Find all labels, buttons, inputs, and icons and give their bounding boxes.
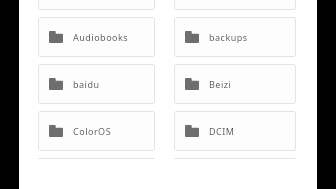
other: Folder	[49, 125, 63, 137]
staticText: baidu	[73, 78, 100, 90]
other: Folder	[185, 125, 199, 137]
button[interactable]: Folder	[38, 111, 155, 151]
other: Folder	[49, 31, 63, 43]
button[interactable]: Folder	[174, 17, 296, 57]
staticText: backups	[209, 31, 248, 43]
button[interactable]: Folder	[38, 17, 155, 57]
button[interactable]: Folder	[174, 111, 296, 151]
other: Folder	[185, 31, 199, 43]
button[interactable]: Folder	[38, 0, 155, 10]
staticText: Beizi	[209, 78, 232, 90]
staticText: Audiobooks	[73, 31, 129, 43]
other: Folder	[49, 78, 63, 90]
staticText: ColorOS	[73, 125, 112, 137]
button[interactable]: Folder	[174, 64, 296, 104]
staticText: DCIM	[209, 125, 235, 137]
button[interactable]: Folder	[38, 64, 155, 104]
other: Folder	[185, 78, 199, 90]
button[interactable]: Folder	[174, 0, 296, 10]
